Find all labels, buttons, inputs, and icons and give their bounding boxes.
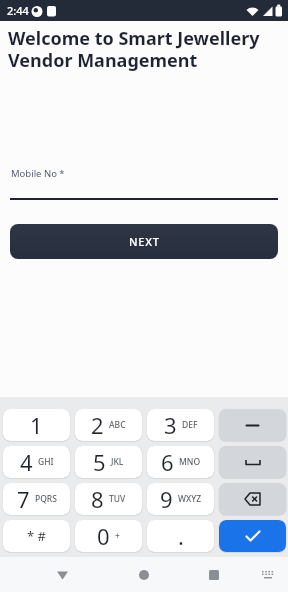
- staticText: 0: [97, 521, 110, 551]
- button[interactable]: [219, 520, 286, 552]
- button[interactable]: [50, 563, 74, 587]
- button[interactable]: [219, 409, 286, 441]
- button[interactable]: 6: [147, 446, 214, 478]
- button[interactable]: [132, 563, 156, 587]
- staticText: DEF: [182, 419, 198, 431]
- button[interactable]: 2: [75, 409, 142, 441]
- staticText: 6: [161, 447, 174, 477]
- button[interactable]: NEXT: [10, 224, 278, 259]
- staticText: GHI: [38, 456, 54, 468]
- button[interactable]: 8: [75, 483, 142, 515]
- staticText: MNO: [179, 456, 201, 468]
- button[interactable]: 1: [3, 409, 70, 441]
- staticText: 2: [91, 410, 104, 440]
- staticText: ABC: [109, 419, 126, 431]
- button[interactable]: 5: [75, 446, 142, 478]
- staticText: Welcome to Smart Jewellery Vendor Manage…: [8, 26, 260, 73]
- button[interactable]: [202, 563, 226, 587]
- button[interactable]: .: [147, 520, 214, 552]
- button[interactable]: 0: [75, 520, 142, 552]
- staticText: +: [115, 530, 120, 542]
- button[interactable]: [258, 565, 278, 585]
- staticText: 7: [17, 484, 30, 514]
- staticText: JKL: [111, 456, 124, 468]
- staticText: WXYZ: [178, 493, 202, 505]
- staticText: TUV: [109, 493, 126, 505]
- staticText: PQRS: [35, 493, 57, 505]
- staticText: Mobile No *: [11, 167, 65, 180]
- button[interactable]: 7: [3, 483, 70, 515]
- staticText: NEXT: [129, 234, 160, 249]
- staticText: 5: [93, 447, 106, 477]
- staticText: * #: [27, 527, 46, 545]
- button[interactable]: [219, 483, 286, 515]
- staticText: 3: [164, 410, 177, 440]
- staticText: 8: [91, 484, 104, 514]
- staticText: 2:44: [7, 3, 29, 18]
- button[interactable]: * #: [3, 520, 70, 552]
- staticText: 4: [20, 447, 33, 477]
- button[interactable]: 4: [3, 446, 70, 478]
- staticText: .: [178, 521, 184, 551]
- staticText: 1: [30, 410, 43, 440]
- button[interactable]: 3: [147, 409, 214, 441]
- button[interactable]: 9: [147, 483, 214, 515]
- button[interactable]: [219, 446, 286, 478]
- staticText: 9: [160, 484, 173, 514]
